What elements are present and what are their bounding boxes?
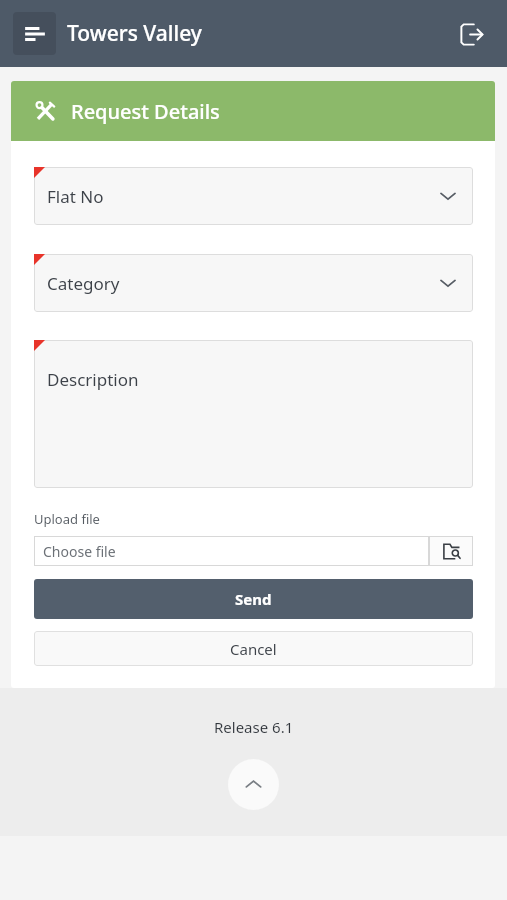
- button[interactable]: Category: [34, 254, 473, 312]
- button[interactable]: Cancel: [34, 631, 473, 666]
- button[interactable]: Description: [34, 340, 473, 488]
- button[interactable]: Logout: [453, 16, 489, 52]
- staticText: Cancel: [230, 639, 277, 659]
- staticText: Release 6.1: [214, 717, 294, 737]
- button[interactable]: Send: [34, 579, 473, 619]
- staticText: Category: [47, 272, 120, 295]
- staticText: Description: [47, 368, 139, 391]
- button[interactable]: Flat No: [34, 167, 473, 225]
- staticText: Request Details: [71, 98, 220, 125]
- staticText: Flat No: [47, 185, 104, 208]
- button[interactable]: Scroll to top: [228, 759, 279, 810]
- button[interactable]: Choose file: [34, 536, 473, 566]
- staticText: Upload file: [34, 510, 100, 528]
- staticText: Send: [235, 589, 272, 609]
- staticText: Towers Valley: [67, 19, 202, 48]
- staticText: Choose file: [43, 542, 116, 561]
- button[interactable]: Menu: [13, 12, 56, 55]
